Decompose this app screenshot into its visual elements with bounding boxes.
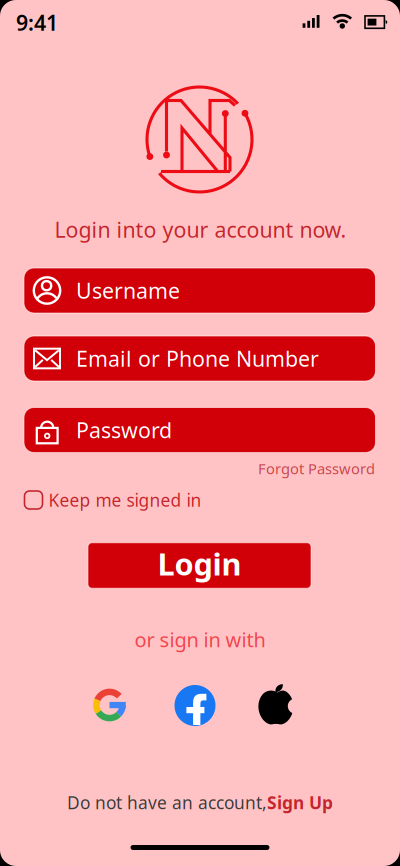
staticText: Do not have an account, [67,791,267,814]
staticText: Login into your account now. [54,215,346,244]
staticText: Username [76,276,180,305]
button[interactable]: Username [24,268,375,313]
staticText: Password [76,416,172,444]
button[interactable]: Sign in with Apple [254,683,298,725]
staticText: Login [157,543,241,584]
staticText: Sign Up [267,791,333,814]
button[interactable]: Email or Phone Number [24,336,375,381]
button[interactable]: Sign in with Facebook [174,685,215,726]
button[interactable]: Password [24,407,375,452]
staticText: Keep me signed in [48,488,201,511]
button[interactable]: Keep me signed in [24,488,201,511]
staticText: 9:41 [16,8,58,37]
button[interactable]: Forgot Password [258,459,375,478]
button[interactable]: Sign Up [267,791,333,814]
button[interactable]: Sign in with Google [92,688,126,722]
staticText: or sign in with [134,626,265,653]
button[interactable]: Login [88,543,311,588]
staticText: Email or Phone Number [76,344,319,373]
staticText: Forgot Password [258,459,375,478]
